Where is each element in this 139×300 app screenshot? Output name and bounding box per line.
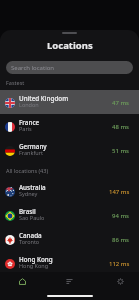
staticText: Brasil — [19, 207, 36, 216]
button[interactable]: Settings — [110, 272, 131, 290]
staticText: Search location — [11, 64, 55, 72]
staticText: United Kingdom — [19, 94, 69, 103]
staticText: London — [19, 101, 39, 108]
staticText: Locations — [47, 39, 93, 52]
button[interactable]: Brasil — [0, 203, 139, 227]
button[interactable]: Hong Kong — [0, 251, 139, 275]
staticText: 48 ms — [112, 123, 130, 131]
staticText: 51 ms — [112, 147, 130, 155]
button[interactable]: Australia — [0, 179, 139, 203]
button[interactable]: Germany — [0, 138, 139, 162]
button[interactable]: Canada — [0, 227, 139, 251]
staticText: Sao Paulo — [19, 214, 45, 221]
button[interactable]: Home — [12, 272, 33, 290]
staticText: Canada — [19, 231, 42, 240]
button[interactable]: Locations — [59, 272, 80, 290]
staticText: Fastest — [6, 79, 25, 86]
staticText: 147 ms — [109, 188, 130, 196]
staticText: All locations (43) — [6, 167, 49, 174]
staticText: 86 ms — [112, 236, 130, 244]
button[interactable]: Search location — [6, 61, 133, 74]
staticText: 94 ms — [112, 212, 130, 220]
staticText: Toronto — [19, 238, 40, 245]
button[interactable]: France — [0, 114, 139, 138]
staticText: 47 ms — [112, 99, 130, 107]
button[interactable]: United Kingdom — [0, 90, 139, 114]
staticText: Sydney — [19, 190, 38, 197]
staticText: Hong Kong — [19, 262, 49, 269]
staticText: 112 ms — [109, 260, 130, 268]
staticText: Germany — [19, 142, 47, 151]
staticText: Frankfurt — [19, 149, 43, 156]
staticText: Paris — [19, 125, 32, 132]
staticText: Australia — [19, 183, 46, 192]
staticText: Hong Kong — [19, 255, 53, 264]
staticText: France — [19, 118, 40, 127]
